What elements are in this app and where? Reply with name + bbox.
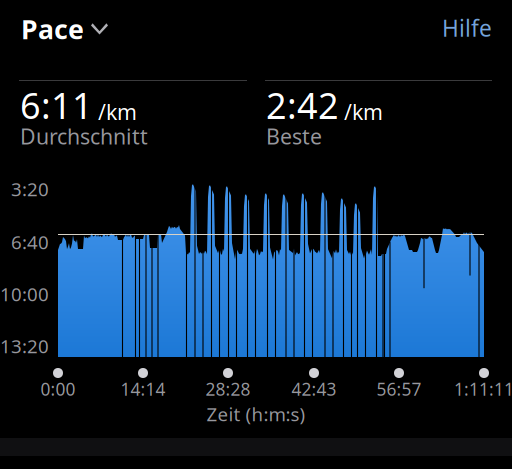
staticText: 28:28 <box>205 377 250 400</box>
staticText: Durchschnitt <box>20 122 148 150</box>
button[interactable]: Pace <box>21 11 141 47</box>
staticText: 56:57 <box>376 377 421 400</box>
staticText: 13:20 <box>0 334 49 358</box>
staticText: Hilfe <box>442 13 492 43</box>
button[interactable]: Hilfe <box>442 13 492 43</box>
staticText: 3:20 <box>11 177 49 201</box>
staticText: 10:00 <box>0 282 49 306</box>
staticText: /km <box>344 98 383 126</box>
staticText: 42:43 <box>291 377 336 400</box>
staticText: 1:11:11 <box>454 377 512 400</box>
staticText: 14:14 <box>120 377 165 400</box>
staticText: 6:11 <box>20 81 93 129</box>
staticText: 6:40 <box>11 230 49 254</box>
staticText: Pace <box>21 11 84 47</box>
staticText: Beste <box>266 122 322 150</box>
staticText: 2:42 <box>266 81 339 129</box>
staticText: Zeit (h:m:s) <box>206 402 305 426</box>
staticText: 0:00 <box>40 377 75 400</box>
staticText: /km <box>98 98 137 126</box>
